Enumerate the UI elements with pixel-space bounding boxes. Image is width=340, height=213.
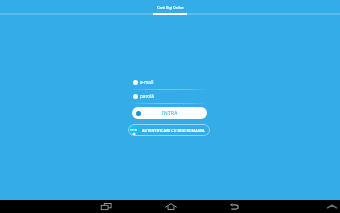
button[interactable]: Recent apps [91,200,121,212]
button[interactable]: Home [155,200,186,212]
button[interactable]: INTRA [132,107,207,119]
button[interactable]: Cont Digi Online [153,0,187,15]
staticText: Cont Digi Online [157,5,184,10]
staticText: AUTENTIFICARE CU DIGI ROMANIA [142,128,205,133]
button[interactable]: AUTENTIFICARE CU DIGI ROMANIA [128,124,210,136]
button[interactable]: Back [219,200,249,212]
button[interactable]: parolă [133,93,204,104]
staticText: e-mail [140,79,154,85]
staticText: INTRA [162,110,178,117]
button[interactable]: Expand status bar [324,200,340,212]
button[interactable]: e-mail [133,79,204,90]
staticText: parolă [140,93,154,99]
